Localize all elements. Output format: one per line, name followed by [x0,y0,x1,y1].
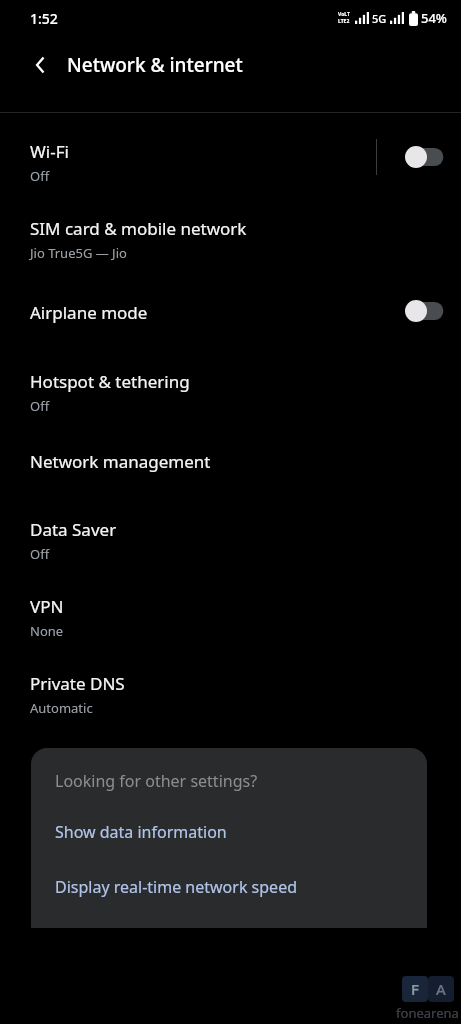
button[interactable]: Display real-time network speed [55,876,407,898]
button[interactable]: Airplane mode [0,262,461,324]
staticText: fonearena [396,1004,459,1022]
staticText: Off [30,167,50,185]
staticText: None [30,622,64,640]
staticText: Show data information [55,821,227,843]
staticText: Hotspot & tethering [30,370,190,393]
staticText: 54% [421,9,447,27]
staticText: Network management [30,450,211,473]
staticText: F [411,979,419,999]
staticText: Network & internet [67,52,243,78]
staticText: Data Saver [30,518,117,541]
button[interactable]: SIM card & mobile network [0,185,461,262]
button[interactable]: Private DNS [0,640,461,717]
staticText: Off [30,545,50,563]
staticText: 1:52 [30,9,58,28]
staticText: SIM card & mobile network [30,217,247,240]
button[interactable]: Data Saver [0,473,461,563]
button[interactable]: VPN [0,563,461,640]
staticText: VoLT [338,11,350,18]
staticText: Jio True5G — Jio [30,244,127,262]
staticText: A [436,979,446,999]
staticText: Display real-time network speed [55,876,298,898]
button[interactable]: Back [24,48,58,82]
staticText: VPN [30,595,64,618]
button[interactable]: Airplane mode toggle [405,300,445,322]
staticText: Airplane mode [30,301,148,324]
button[interactable]: Show data information [55,821,407,843]
staticText: LTE2 [338,18,350,25]
button[interactable]: Wi-Fi [0,113,461,185]
button[interactable]: Wi-Fi toggle [405,146,445,168]
staticText: Looking for other settings? [55,770,258,792]
staticText: Automatic [30,699,93,717]
button[interactable]: Hotspot & tethering [0,324,461,415]
staticText: Off [30,397,50,415]
staticText: Wi-Fi [30,140,69,163]
button[interactable]: Network management [0,415,461,473]
staticText: 5G [372,11,387,26]
staticText: Private DNS [30,672,125,695]
